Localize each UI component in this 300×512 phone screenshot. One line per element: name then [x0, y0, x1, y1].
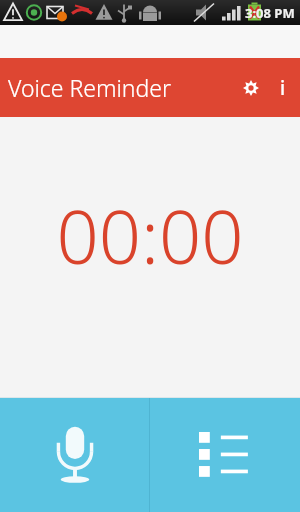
- staticText: Voice Reminder: [8, 72, 172, 103]
- staticText: 3:08 PM: [245, 4, 295, 22]
- button[interactable]: Reminder list: [150, 398, 300, 512]
- staticText: i: [280, 75, 286, 101]
- button[interactable]: Info: [268, 73, 298, 103]
- button[interactable]: Record voice reminder: [0, 398, 149, 512]
- button[interactable]: Settings: [234, 71, 268, 105]
- staticText: 00:00: [56, 185, 244, 286]
